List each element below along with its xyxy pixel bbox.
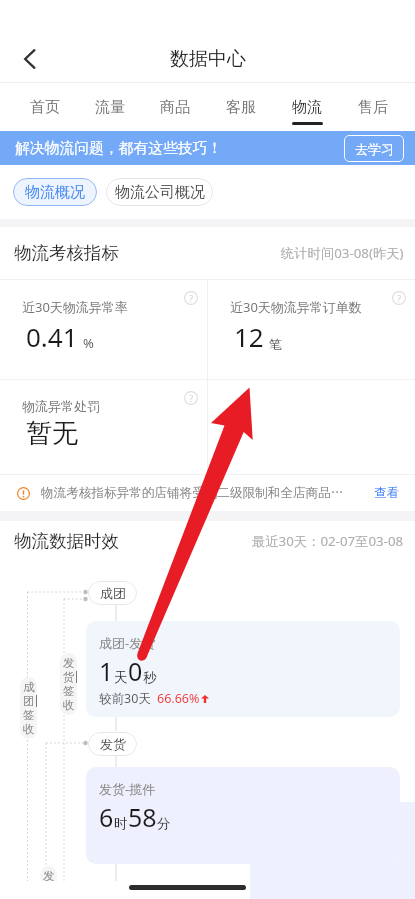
button[interactable]: 物流公司概况 <box>106 178 213 206</box>
staticText: 天 <box>114 669 128 686</box>
button[interactable]: Help <box>184 291 198 305</box>
staticText: 0.41 <box>26 319 78 354</box>
staticText: 66.66% <box>157 690 200 707</box>
staticText: 收 <box>23 722 35 736</box>
button[interactable]: 流量 <box>77 83 142 131</box>
button[interactable]: 成团 <box>88 581 137 605</box>
staticText: 收 <box>63 698 75 712</box>
staticText: 6 <box>99 800 114 834</box>
staticText: 暂无 <box>26 417 78 450</box>
staticText: 统计时间03-08(昨天) <box>281 244 404 262</box>
button[interactable]: Help <box>392 291 406 305</box>
staticText: 秒 <box>143 669 157 686</box>
button[interactable]: 首页 <box>12 83 77 131</box>
button[interactable]: 去学习 <box>344 135 404 162</box>
staticText: 物流 <box>292 98 322 117</box>
staticText: 成团 <box>100 585 126 601</box>
button[interactable]: 发货 <box>88 732 137 756</box>
staticText: ? <box>397 292 402 305</box>
staticText: 最近30天：02-07至03-08 <box>252 532 404 550</box>
staticText: 首页 <box>30 98 60 117</box>
button[interactable]: 揽件 <box>93 882 142 899</box>
staticText: 发货 <box>100 736 126 752</box>
staticText: 团 <box>23 694 35 708</box>
staticText: 58 <box>128 800 157 834</box>
button[interactable]: 近30天物流异常订单数 <box>208 280 415 379</box>
button[interactable]: 成团-发货 <box>86 621 400 717</box>
staticText: 解决物流问题，都有这些技巧！ <box>15 139 223 158</box>
staticText: 商品 <box>160 98 190 117</box>
button[interactable]: 发货-揽件 <box>86 767 400 864</box>
staticText: 发货-揽件 <box>99 780 156 798</box>
staticText: 较前30天 <box>99 690 151 707</box>
button[interactable]: 物流概况 <box>13 178 97 206</box>
staticText: 物流公司概况 <box>115 183 205 202</box>
button[interactable]: 解决物流问题，都有这些技巧！ <box>0 131 415 165</box>
staticText: 成 <box>23 680 35 694</box>
staticText: % <box>83 334 94 352</box>
staticText: 近30天物流异常率 <box>22 298 128 316</box>
staticText: 近30天物流异常订单数 <box>230 298 362 316</box>
staticText: 物流考核指标 <box>14 242 119 264</box>
staticText: 分 <box>157 815 171 832</box>
staticText: 物流概况 <box>25 183 85 202</box>
staticText: 发 <box>63 656 75 670</box>
staticText: 12 <box>234 319 264 354</box>
button[interactable]: 客服 <box>208 83 274 131</box>
button[interactable]: Help <box>184 391 198 405</box>
staticText: 时 <box>114 815 128 832</box>
staticText: ? <box>189 292 194 305</box>
staticText: 流量 <box>95 98 125 117</box>
staticText: 揽件 <box>105 886 131 899</box>
button[interactable]: 物流异常处罚 <box>0 380 207 474</box>
button[interactable]: 商品 <box>142 83 208 131</box>
staticText: 数据中心 <box>170 47 246 71</box>
staticText: 客服 <box>226 98 256 117</box>
staticText: 签 <box>23 708 35 722</box>
staticText: 0 <box>128 654 143 688</box>
button[interactable]: 物流 <box>274 83 340 131</box>
button[interactable]: 查看 <box>374 485 399 501</box>
button[interactable]: 售后 <box>340 83 406 131</box>
staticText: 售后 <box>358 98 388 117</box>
button[interactable]: 近30天物流异常率 <box>0 280 207 379</box>
staticText: 物流数据时效 <box>14 530 119 552</box>
staticText: 成团-发货 <box>99 634 156 652</box>
staticText: 物流考核指标异常的店铺将受到二级限制和全店商品降权... <box>41 485 352 501</box>
button[interactable]: 物流考核指标异常的店铺将受到二级限制和全店商品降权... <box>0 475 415 511</box>
staticText: 发 <box>43 869 55 883</box>
staticText: 物流异常处罚 <box>22 398 100 414</box>
staticText: 笔 <box>269 336 282 352</box>
staticText: 1 <box>99 654 114 688</box>
staticText: 去学习 <box>355 141 394 157</box>
staticText: 货 <box>63 670 75 684</box>
staticText: 签 <box>63 684 75 698</box>
staticText: ? <box>189 392 194 405</box>
button[interactable]: Back <box>10 39 50 79</box>
